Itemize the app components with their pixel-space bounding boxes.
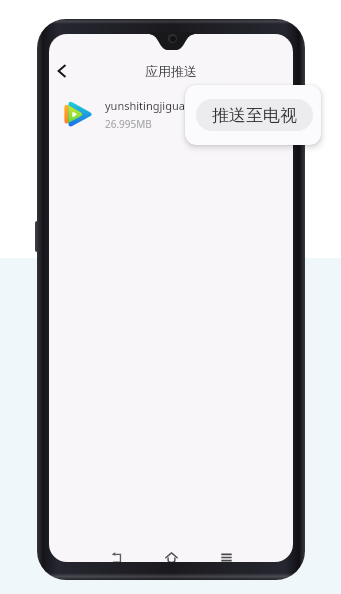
staticText: 推送至电视 [212, 105, 297, 126]
staticText: yunshitingjiguang_sdk [105, 98, 222, 113]
button[interactable]: Recent apps [217, 548, 235, 562]
button[interactable]: Back [49, 58, 74, 84]
button[interactable]: 推送至电视 [185, 85, 321, 145]
button[interactable]: Back [107, 548, 125, 562]
button[interactable]: Home [162, 548, 180, 562]
staticText: 26.995MB [105, 117, 152, 131]
staticText: 应用推送 [145, 63, 197, 79]
button[interactable]: 推送至电视 [196, 99, 313, 131]
